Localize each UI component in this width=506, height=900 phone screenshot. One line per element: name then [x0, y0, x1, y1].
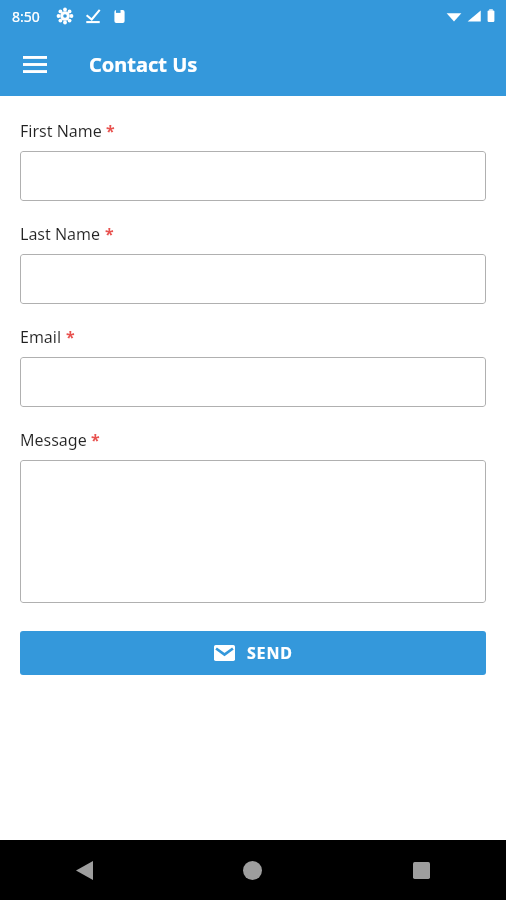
- staticText: Last Name: [20, 223, 101, 245]
- button[interactable]: [20, 460, 486, 603]
- button[interactable]: Open navigation menu: [12, 41, 58, 87]
- staticText: Email: [20, 326, 62, 348]
- staticText: Contact Us: [89, 51, 198, 78]
- button[interactable]: Home: [168, 840, 337, 900]
- button[interactable]: [20, 357, 486, 407]
- staticText: SEND: [247, 642, 293, 664]
- staticText: Message: [20, 429, 87, 451]
- button[interactable]: Recent apps: [337, 840, 506, 900]
- staticText: *: [106, 120, 115, 142]
- staticText: *: [91, 429, 100, 451]
- button[interactable]: [20, 254, 486, 304]
- staticText: 8:50: [12, 7, 40, 26]
- button[interactable]: Back: [0, 840, 168, 900]
- staticText: *: [105, 223, 114, 245]
- staticText: *: [66, 326, 75, 348]
- button[interactable]: [20, 151, 486, 201]
- staticText: First Name: [20, 120, 102, 142]
- button[interactable]: SEND: [20, 631, 486, 675]
